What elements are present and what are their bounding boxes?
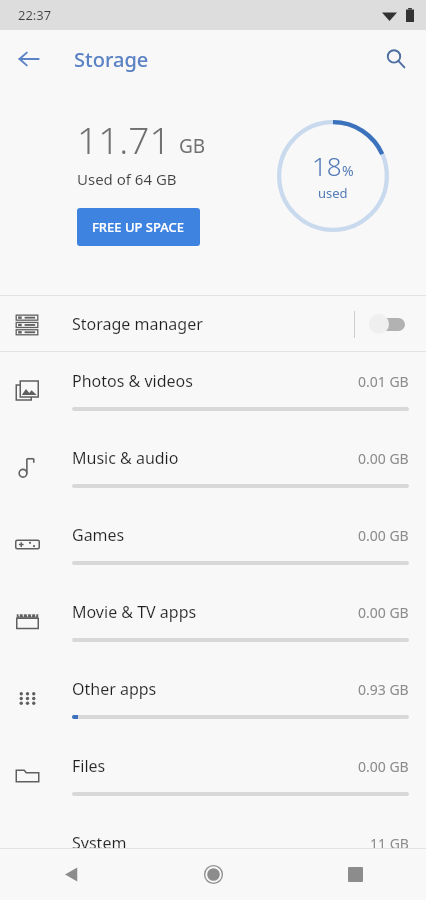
staticText: Used of 64 GB — [77, 169, 177, 189]
staticText: GB — [179, 133, 206, 159]
button[interactable]: Files — [0, 737, 426, 814]
staticText: Files — [72, 755, 358, 777]
button[interactable]: Photos & videos — [0, 352, 426, 429]
button[interactable]: Movie & TV apps — [0, 583, 426, 660]
button[interactable]: Back — [7, 37, 51, 81]
button[interactable]: Music & audio — [0, 429, 426, 506]
button[interactable]: Games — [0, 506, 426, 583]
staticText: 11.71 — [77, 114, 171, 164]
button[interactable]: Home — [142, 849, 284, 900]
staticText: 22:37 — [18, 6, 52, 24]
button[interactable]: System — [0, 814, 426, 891]
button[interactable]: Search — [374, 37, 418, 81]
staticText: Storage — [74, 46, 149, 73]
button[interactable]: Back — [0, 849, 142, 900]
staticText: 0.00 GB — [358, 603, 409, 622]
staticText: 18 — [312, 148, 342, 183]
staticText: 0.00 GB — [358, 526, 409, 545]
staticText: Movie & TV apps — [72, 601, 358, 623]
staticText: 11 GB — [370, 834, 409, 853]
button[interactable]: FREE UP SPACE — [77, 208, 200, 246]
staticText: 0.00 GB — [358, 757, 409, 776]
button[interactable]: Storage manager — [0, 296, 426, 351]
button[interactable]: Toggle storage manager — [368, 309, 410, 339]
button[interactable]: Recent apps — [284, 849, 426, 900]
staticText: 0.93 GB — [358, 680, 409, 699]
staticText: 0.01 GB — [358, 372, 409, 391]
staticText: used — [318, 184, 348, 202]
staticText: FREE UP SPACE — [92, 218, 185, 236]
staticText: Storage manager — [72, 313, 203, 335]
staticText: Photos & videos — [72, 370, 358, 392]
staticText: Music & audio — [72, 447, 358, 469]
button[interactable]: Other apps — [0, 660, 426, 737]
staticText: 0.00 GB — [358, 449, 409, 468]
staticText: Games — [72, 524, 358, 546]
staticText: System — [72, 832, 370, 854]
staticText: Other apps — [72, 678, 358, 700]
staticText: % — [342, 161, 354, 180]
